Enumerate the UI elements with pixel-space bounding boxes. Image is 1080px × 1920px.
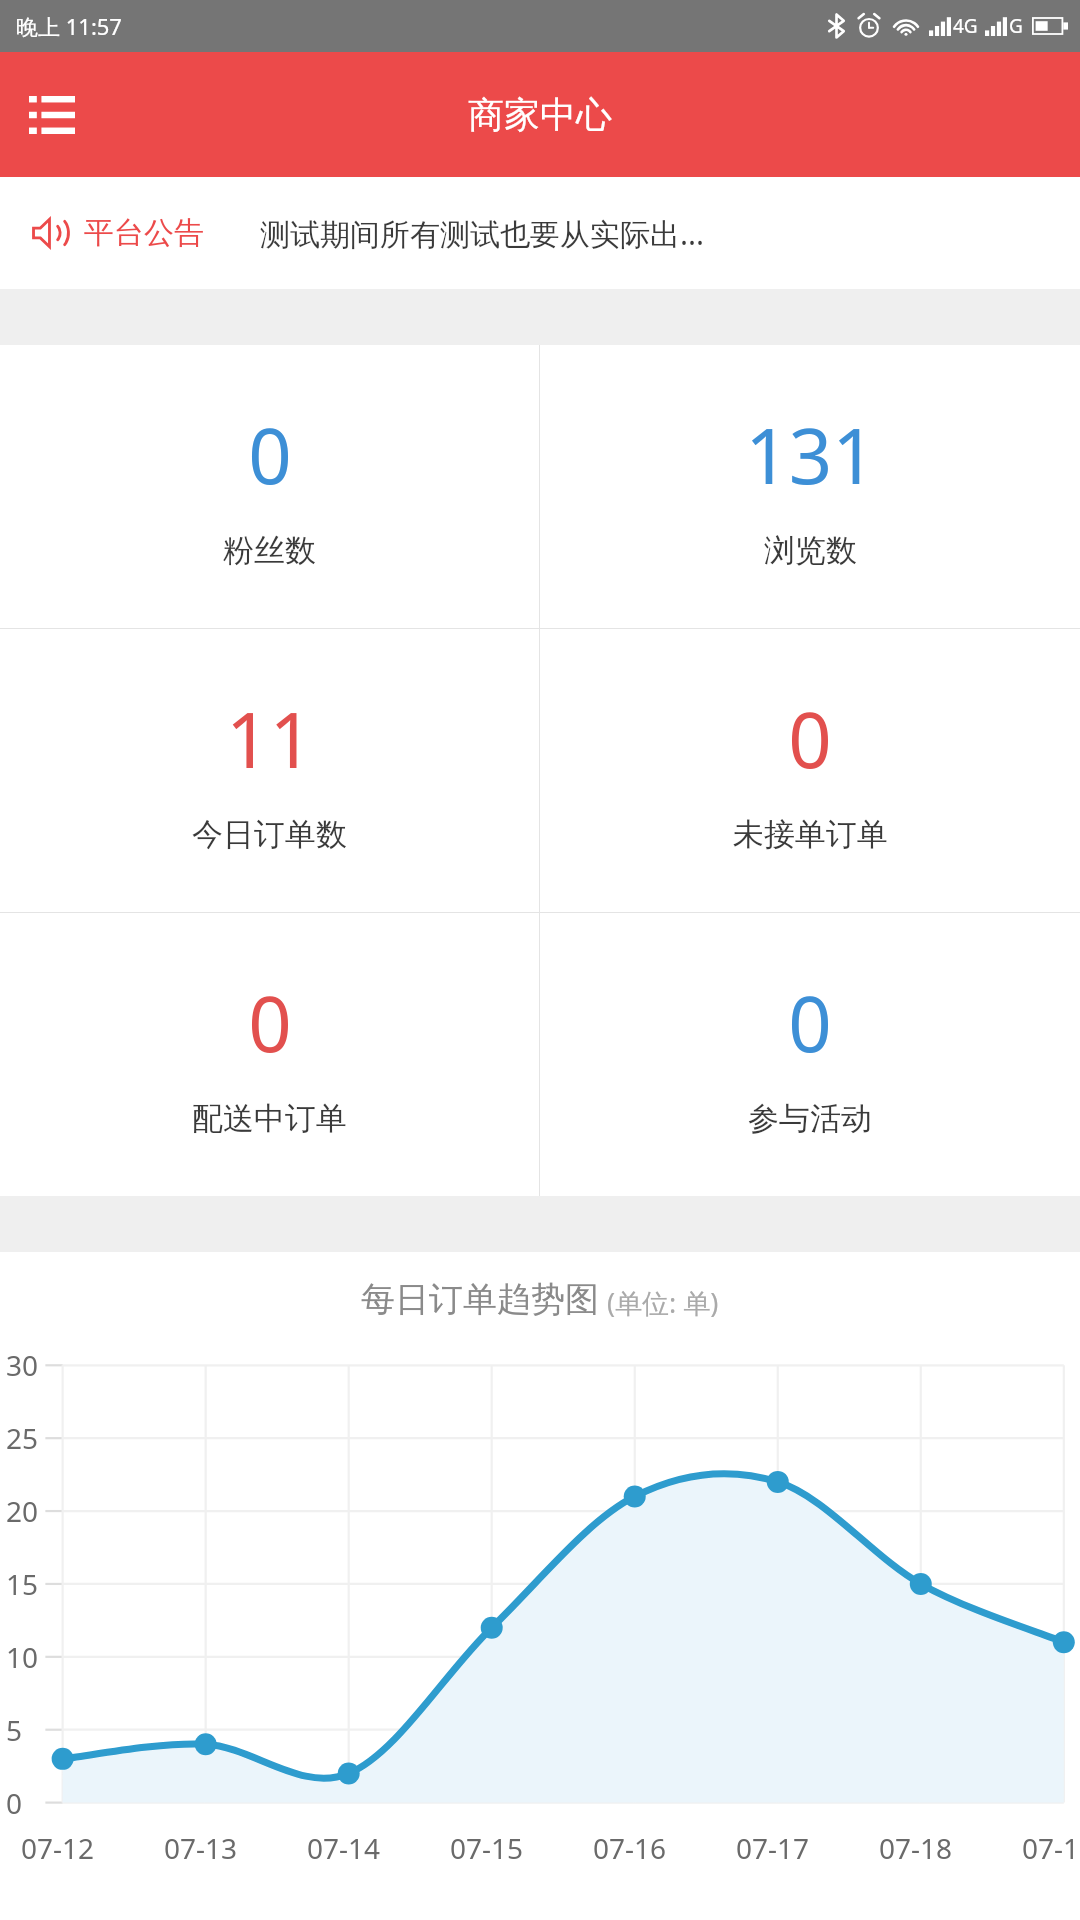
button[interactable]: 131 xyxy=(540,345,1080,628)
staticText: 粉丝数 xyxy=(223,531,316,570)
staticText: 131 xyxy=(745,403,876,507)
staticText: 今日订单数 xyxy=(192,815,347,854)
staticText: 11 xyxy=(226,687,313,791)
staticText: 15 xyxy=(6,1565,39,1603)
staticText: 25 xyxy=(6,1419,39,1457)
staticText: 07-16 xyxy=(593,1829,667,1867)
staticText: 测试期间所有测试也要从实际出... xyxy=(260,213,705,254)
button[interactable]: 0 xyxy=(540,629,1080,912)
staticText: 07-19 xyxy=(1022,1829,1080,1867)
staticText: 0 xyxy=(248,403,292,507)
staticText: 0 xyxy=(248,971,292,1075)
staticText: 07-15 xyxy=(450,1829,524,1867)
button[interactable]: Open navigation menu xyxy=(18,81,86,149)
button[interactable]: 平台公告 xyxy=(0,177,1080,289)
staticText: (单位: 单) xyxy=(607,1284,719,1321)
staticText: 商家中心 xyxy=(468,92,612,137)
button[interactable]: 0 xyxy=(0,913,539,1196)
staticText: 07-13 xyxy=(164,1829,238,1867)
staticText: 每日订单趋势图 xyxy=(361,1278,599,1321)
staticText: 0 xyxy=(788,971,832,1075)
staticText: 07-14 xyxy=(307,1829,381,1867)
staticText: 20 xyxy=(6,1492,39,1530)
staticText: 0 xyxy=(6,1784,23,1822)
staticText: 4G xyxy=(953,13,978,39)
staticText: 未接单订单 xyxy=(733,815,888,854)
button[interactable]: 11 xyxy=(0,629,539,912)
staticText: 配送中订单 xyxy=(192,1099,347,1138)
staticText: 晚上 11:57 xyxy=(16,11,122,41)
staticText: 浏览数 xyxy=(764,531,857,570)
staticText: 30 xyxy=(6,1346,39,1384)
staticText: 参与活动 xyxy=(748,1099,872,1138)
staticText: 10 xyxy=(6,1638,39,1676)
staticText: 07-12 xyxy=(21,1829,95,1867)
staticText: 5 xyxy=(6,1711,23,1749)
button[interactable]: 0 xyxy=(540,913,1080,1196)
staticText: 平台公告 xyxy=(84,214,204,252)
button[interactable]: 0 xyxy=(0,345,539,628)
staticText: 07-18 xyxy=(879,1829,953,1867)
staticText: 07-17 xyxy=(736,1829,810,1867)
staticText: G xyxy=(1009,13,1023,39)
staticText: 0 xyxy=(788,687,832,791)
